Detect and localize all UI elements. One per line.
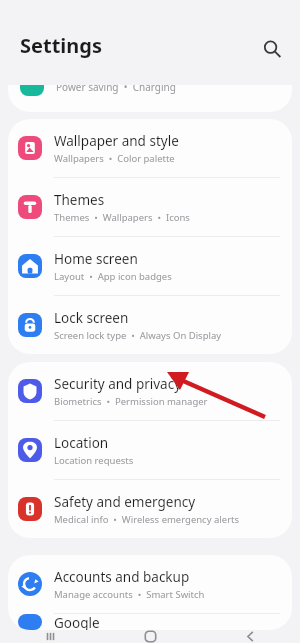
button[interactable]: Home [100, 630, 200, 643]
button[interactable]: Search settings [254, 31, 290, 67]
staticText: Medical info • Wireless emergency alerts [54, 513, 240, 526]
staticText: Biometrics • Permission manager [54, 395, 208, 408]
staticText: Screen lock type • Always On Display [54, 329, 222, 342]
button[interactable]: Power saving • Charging [8, 85, 292, 112]
staticText: Power saving • Charging [56, 85, 176, 94]
staticText: Safety and emergency [54, 493, 196, 511]
button[interactable]: Recent apps [0, 630, 100, 643]
button[interactable]: Google [8, 614, 292, 630]
staticText: Settings [20, 32, 102, 59]
staticText: Accounts and backup [54, 568, 190, 586]
button[interactable]: Wallpaper and style [8, 119, 292, 177]
staticText: Location [54, 434, 109, 452]
button[interactable]: Lock screen [8, 296, 292, 354]
staticText: Lock screen [54, 309, 129, 327]
staticText: Themes • Wallpapers • Icons [54, 211, 190, 224]
button[interactable]: Security and privacy [8, 362, 292, 420]
button[interactable]: Safety and emergency [8, 480, 292, 538]
button[interactable]: Location [8, 421, 292, 479]
staticText: Google [54, 614, 100, 630]
staticText: Wallpapers • Color palette [54, 152, 175, 165]
button[interactable]: Accounts and backup [8, 555, 292, 613]
button[interactable]: Back [200, 630, 300, 643]
staticText: Layout • App icon badges [54, 270, 172, 283]
button[interactable]: Home screen [8, 237, 292, 295]
staticText: Wallpaper and style [54, 132, 179, 150]
staticText: Home screen [54, 250, 138, 268]
button[interactable]: Themes [8, 178, 292, 236]
staticText: Security and privacy [54, 375, 182, 393]
staticText: Themes [54, 191, 105, 209]
staticText: Location requests [54, 454, 134, 467]
staticText: Manage accounts • Smart Switch [54, 588, 205, 601]
